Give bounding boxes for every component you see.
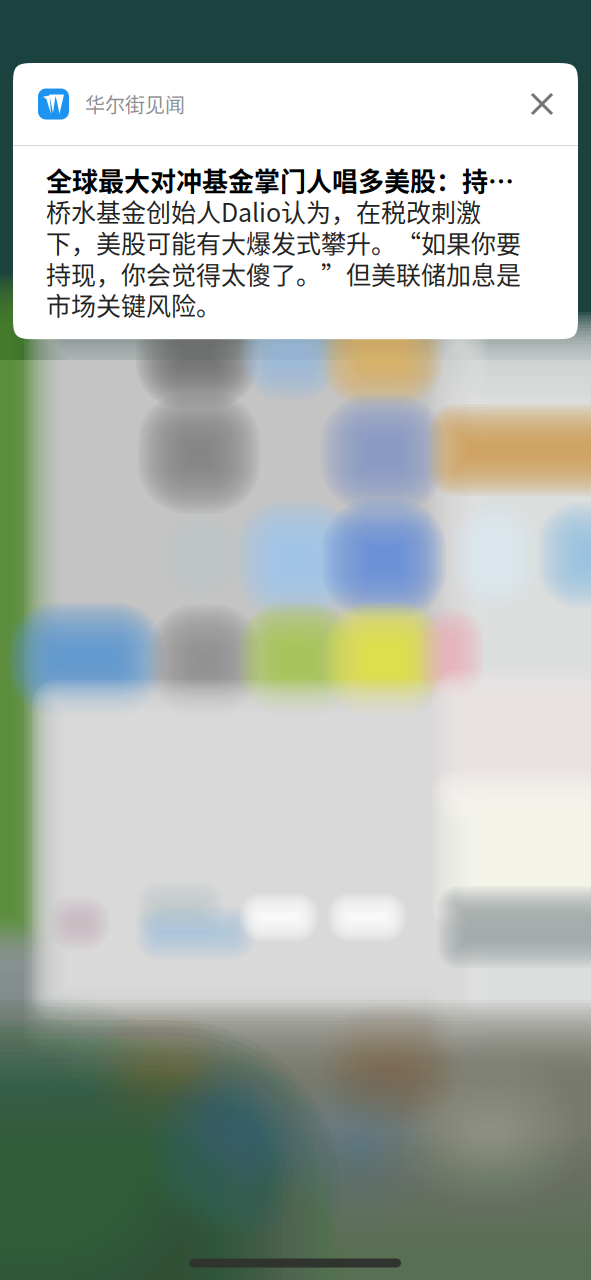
staticText: 全球最大对冲基金掌门人唱多美股：持…	[46, 161, 514, 199]
staticText: 桥水基金创始人Dalio认为，在税改刺激 下，美股可能有大爆发式攀升。“如果你要…	[46, 196, 521, 320]
button[interactable]: Close	[514, 76, 570, 132]
staticText: 华尔街见闻	[85, 89, 185, 118]
